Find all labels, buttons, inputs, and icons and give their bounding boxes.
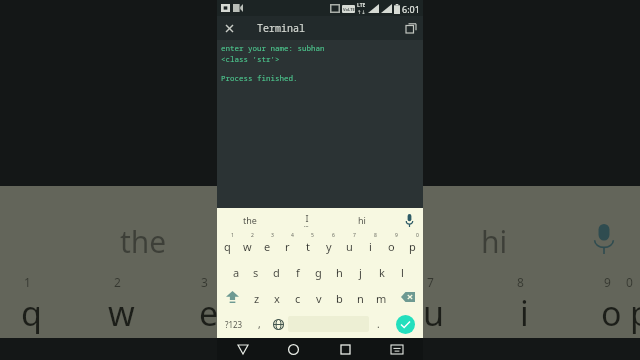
staticText: VoLTE xyxy=(343,7,355,12)
button[interactable]: n xyxy=(350,284,371,310)
staticText: g xyxy=(315,265,322,280)
staticText: 4 xyxy=(291,232,294,239)
button[interactable]: Home xyxy=(268,338,319,360)
staticText: 8 xyxy=(517,274,524,290)
button[interactable]: c xyxy=(287,284,308,310)
staticText: 8 xyxy=(374,232,377,239)
button[interactable]: hi xyxy=(339,208,385,232)
staticText: 9 xyxy=(604,274,611,290)
button[interactable]: a xyxy=(226,258,246,284)
button[interactable]: Recents xyxy=(319,338,371,360)
button[interactable]: I xyxy=(283,208,329,232)
button[interactable]: l xyxy=(392,258,413,284)
staticText: q xyxy=(21,290,42,336)
button[interactable]: 2 xyxy=(237,232,257,258)
button[interactable]: ?123 xyxy=(217,310,250,338)
staticText: a xyxy=(233,265,240,280)
staticText: b xyxy=(336,291,343,306)
button[interactable]: d xyxy=(266,258,287,284)
button[interactable]: x xyxy=(267,284,287,310)
button[interactable]: the xyxy=(227,208,273,232)
button[interactable]: Tabs xyxy=(399,16,423,40)
staticText: i xyxy=(520,290,529,336)
staticText: the xyxy=(243,214,257,226)
staticText: hi xyxy=(481,221,508,262)
button[interactable]: m xyxy=(371,284,392,310)
button[interactable]: 1 xyxy=(217,232,237,258)
staticText: e xyxy=(264,239,271,254)
staticText: j xyxy=(359,265,362,280)
button[interactable]: b xyxy=(329,284,350,310)
staticText: r xyxy=(285,239,290,254)
button[interactable]: Switch keyboard xyxy=(371,338,423,360)
staticText: k xyxy=(379,265,385,280)
button[interactable]: 5 xyxy=(297,232,318,258)
staticText: u xyxy=(346,239,353,254)
staticText: ••• xyxy=(304,224,309,229)
staticText: i xyxy=(369,239,372,254)
staticText: 5 xyxy=(311,232,314,239)
staticText: 2 xyxy=(114,274,121,290)
button[interactable]: g xyxy=(308,258,329,284)
button[interactable]: 3 xyxy=(257,232,277,258)
staticText: w xyxy=(108,290,135,336)
button[interactable]: z xyxy=(247,284,267,310)
staticText: , xyxy=(258,317,261,331)
button[interactable]: Change language xyxy=(268,310,288,338)
staticText: the xyxy=(120,221,167,262)
button[interactable]: h xyxy=(329,258,350,284)
staticText: I xyxy=(305,212,309,224)
staticText: hi xyxy=(358,214,366,226)
button[interactable]: . xyxy=(369,310,387,338)
staticText: 3 xyxy=(201,274,208,290)
button[interactable]: , xyxy=(250,310,268,338)
staticText: 0 xyxy=(416,232,419,239)
staticText: n xyxy=(357,291,364,306)
staticText: c xyxy=(295,291,301,306)
staticText: 1 xyxy=(231,232,234,239)
staticText: p xyxy=(409,239,416,254)
staticText: 7 xyxy=(427,274,434,290)
button[interactable]: 9 xyxy=(381,232,402,258)
staticText: . xyxy=(377,317,380,331)
button[interactable]: j xyxy=(350,258,371,284)
button[interactable]: Close xyxy=(217,16,241,40)
staticText: d xyxy=(273,265,280,280)
button[interactable]: Shift xyxy=(217,284,247,310)
button[interactable]: 6 xyxy=(318,232,339,258)
button[interactable]: 7 xyxy=(339,232,360,258)
button[interactable]: s xyxy=(246,258,266,284)
button[interactable]: 8 xyxy=(360,232,381,258)
button[interactable]: v xyxy=(308,284,329,310)
staticText: m xyxy=(376,291,387,306)
staticText: t xyxy=(306,239,310,254)
staticText: q xyxy=(224,239,231,254)
button[interactable]: k xyxy=(371,258,392,284)
staticText: Terminal xyxy=(257,21,305,35)
staticText: <class 'str'> xyxy=(221,54,280,64)
staticText: ?123 xyxy=(225,319,243,330)
staticText: z xyxy=(254,291,260,306)
button[interactable]: f xyxy=(287,258,308,284)
staticText: 1 xyxy=(24,274,31,290)
staticText: 3 xyxy=(271,232,274,239)
button[interactable]: Backspace xyxy=(392,284,423,310)
staticText: l xyxy=(401,265,404,280)
button[interactable]: 0 xyxy=(402,232,423,258)
button[interactable]: Voice input xyxy=(395,208,423,232)
staticText: w xyxy=(243,239,252,254)
staticText: x xyxy=(274,291,280,306)
button[interactable]: 4 xyxy=(277,232,297,258)
button[interactable]: Enter xyxy=(387,310,423,338)
staticText: 9 xyxy=(395,232,398,239)
staticText: 7 xyxy=(353,232,356,239)
staticText: Process finished. xyxy=(221,73,298,83)
staticText: 2 xyxy=(251,232,254,239)
staticText: f xyxy=(296,265,300,280)
staticText: u xyxy=(423,290,445,336)
staticText: o xyxy=(388,239,395,254)
staticText: LTE xyxy=(357,2,366,9)
staticText: ↑↓ xyxy=(357,9,366,15)
button[interactable]: Back xyxy=(217,338,268,360)
